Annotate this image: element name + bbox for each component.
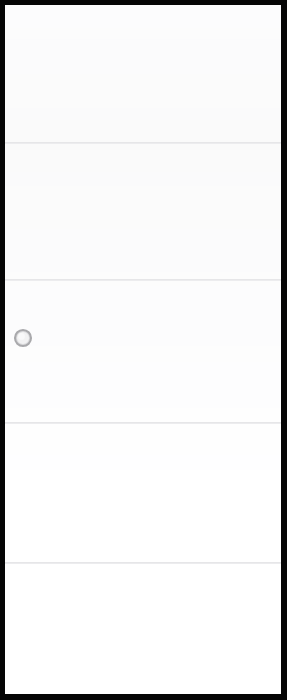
button[interactable]: Loading (5, 281, 281, 422)
button[interactable]: Loading (14, 329, 32, 347)
